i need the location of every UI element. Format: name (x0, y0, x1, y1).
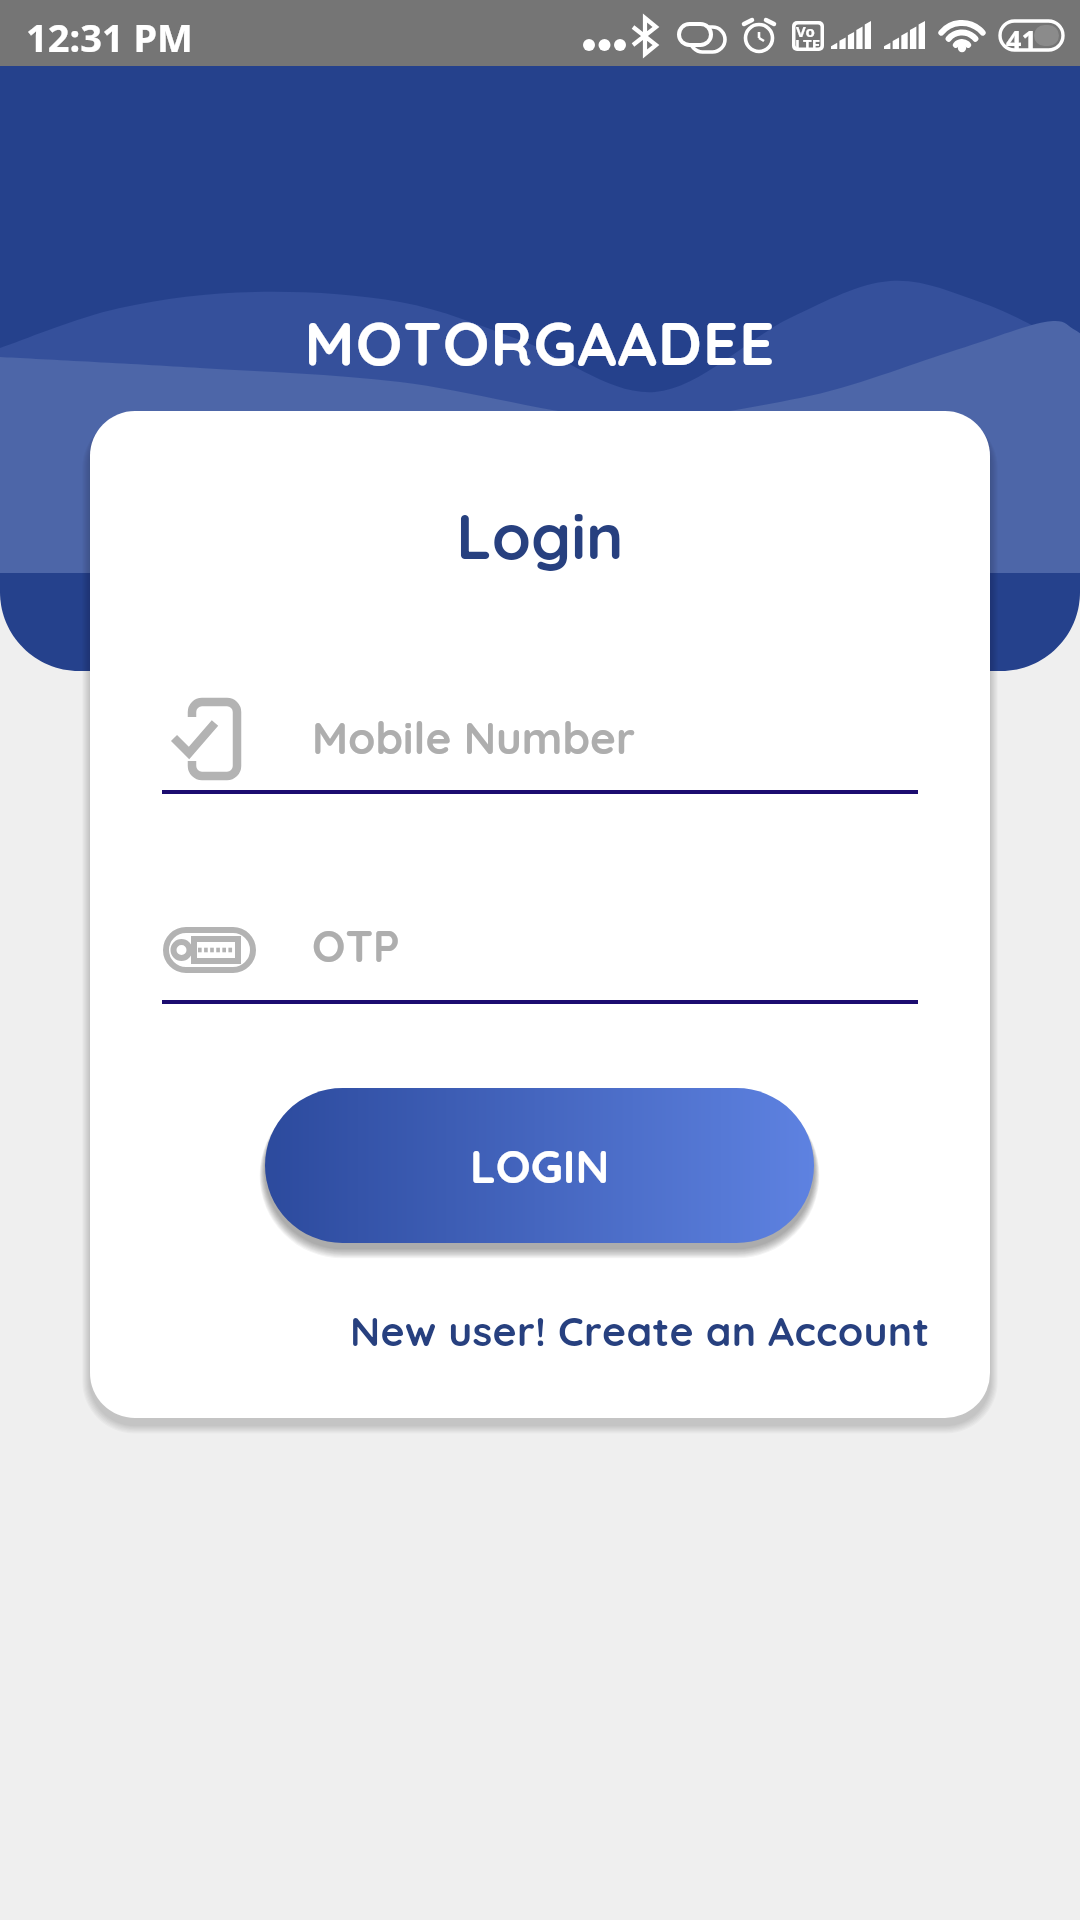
button[interactable]: Mobile Number (90, 411, 990, 521)
staticText: Login (90, 496, 990, 575)
button[interactable]: New user! Create an Account (90, 1305, 930, 1356)
staticText: OTP (312, 918, 400, 973)
staticText: LTE (795, 34, 821, 54)
button[interactable]: OTP (90, 411, 990, 521)
staticText: LOGIN (470, 1137, 610, 1195)
staticText: Mobile Number (312, 710, 636, 765)
staticText: New user! Create an Account (350, 1305, 930, 1356)
staticText: 41 (1006, 21, 1037, 58)
staticText: 12:31 PM (26, 11, 193, 63)
staticText: Vo (796, 21, 815, 41)
staticText: MOTORGAADEE (0, 304, 1080, 380)
button[interactable]: LOGIN (265, 1088, 814, 1243)
